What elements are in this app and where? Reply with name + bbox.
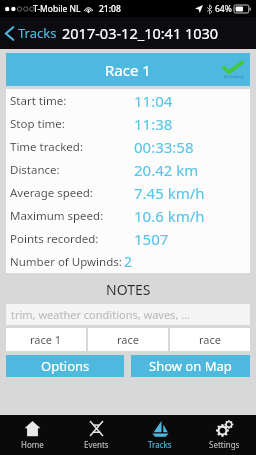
staticText: 11:38 bbox=[134, 114, 173, 134]
button[interactable]: Distance: bbox=[6, 158, 250, 181]
staticText: Maximum speed: bbox=[10, 208, 104, 224]
button[interactable]: Number of Upwinds: bbox=[6, 250, 250, 273]
button[interactable]: race 1 bbox=[6, 328, 86, 351]
staticText: Race 1 bbox=[105, 60, 151, 80]
staticText: 20.42 km bbox=[134, 160, 199, 180]
button[interactable]: Maximum speed: bbox=[6, 204, 250, 227]
button[interactable]: Events bbox=[64, 415, 128, 455]
staticText: Average speed: bbox=[10, 185, 93, 201]
staticText: 7.45 km/h bbox=[134, 183, 205, 203]
staticText: Stop time: bbox=[10, 116, 65, 132]
staticText: race bbox=[199, 332, 221, 347]
staticText: 2017-03-12_10:41 1030 bbox=[62, 23, 219, 43]
staticText: Tracks bbox=[148, 439, 172, 450]
staticText: 11:04 bbox=[134, 91, 173, 111]
staticText: 21:08 bbox=[99, 3, 121, 15]
staticText: race 1 bbox=[30, 332, 62, 347]
staticText: NOTES bbox=[106, 280, 151, 299]
staticText: 1507 bbox=[134, 229, 169, 249]
staticText: trim, weather conditions, waves, ... bbox=[11, 307, 191, 322]
staticText: 00:33:58 bbox=[134, 137, 194, 157]
staticText: 2 bbox=[124, 252, 133, 271]
button[interactable]: Options bbox=[6, 355, 124, 377]
button[interactable]: Show on Map bbox=[131, 355, 250, 377]
button[interactable]: Race 1 bbox=[6, 53, 250, 86]
staticText: Go Sailing bbox=[224, 74, 243, 79]
button[interactable]: Home bbox=[0, 415, 64, 455]
button[interactable]: race bbox=[88, 328, 168, 351]
staticText: Time tracked: bbox=[10, 139, 84, 155]
button[interactable]: Stop time: bbox=[6, 112, 250, 135]
button[interactable]: Average speed: bbox=[6, 181, 250, 204]
staticText: Events bbox=[84, 439, 109, 450]
staticText: T-Mobile NL bbox=[33, 3, 81, 15]
button[interactable]: Points recorded: bbox=[6, 227, 250, 250]
staticText: Number of Upwinds: bbox=[10, 254, 122, 270]
staticText: race bbox=[117, 332, 139, 347]
staticText: Home bbox=[21, 439, 44, 450]
button[interactable]: Settings bbox=[192, 415, 256, 455]
staticText: Tracks bbox=[18, 24, 57, 42]
staticText: Distance: bbox=[10, 162, 60, 178]
button[interactable]: trim, weather conditions, waves, ... bbox=[6, 304, 250, 325]
staticText: Show on Map bbox=[149, 357, 232, 375]
button[interactable]: race bbox=[170, 328, 250, 351]
staticText: Start time: bbox=[10, 93, 67, 109]
staticText: Options bbox=[41, 357, 90, 375]
staticText: Points recorded: bbox=[10, 231, 99, 247]
button[interactable]: Start time: bbox=[6, 89, 250, 112]
button[interactable]: Time tracked: bbox=[6, 135, 250, 158]
staticText: 64% bbox=[215, 3, 232, 15]
staticText: Settings bbox=[209, 439, 240, 450]
button[interactable]: Tracks bbox=[128, 415, 192, 455]
other: Back bbox=[5, 26, 14, 41]
button[interactable]: Back bbox=[0, 17, 256, 49]
staticText: 10.6 km/h bbox=[134, 206, 205, 226]
